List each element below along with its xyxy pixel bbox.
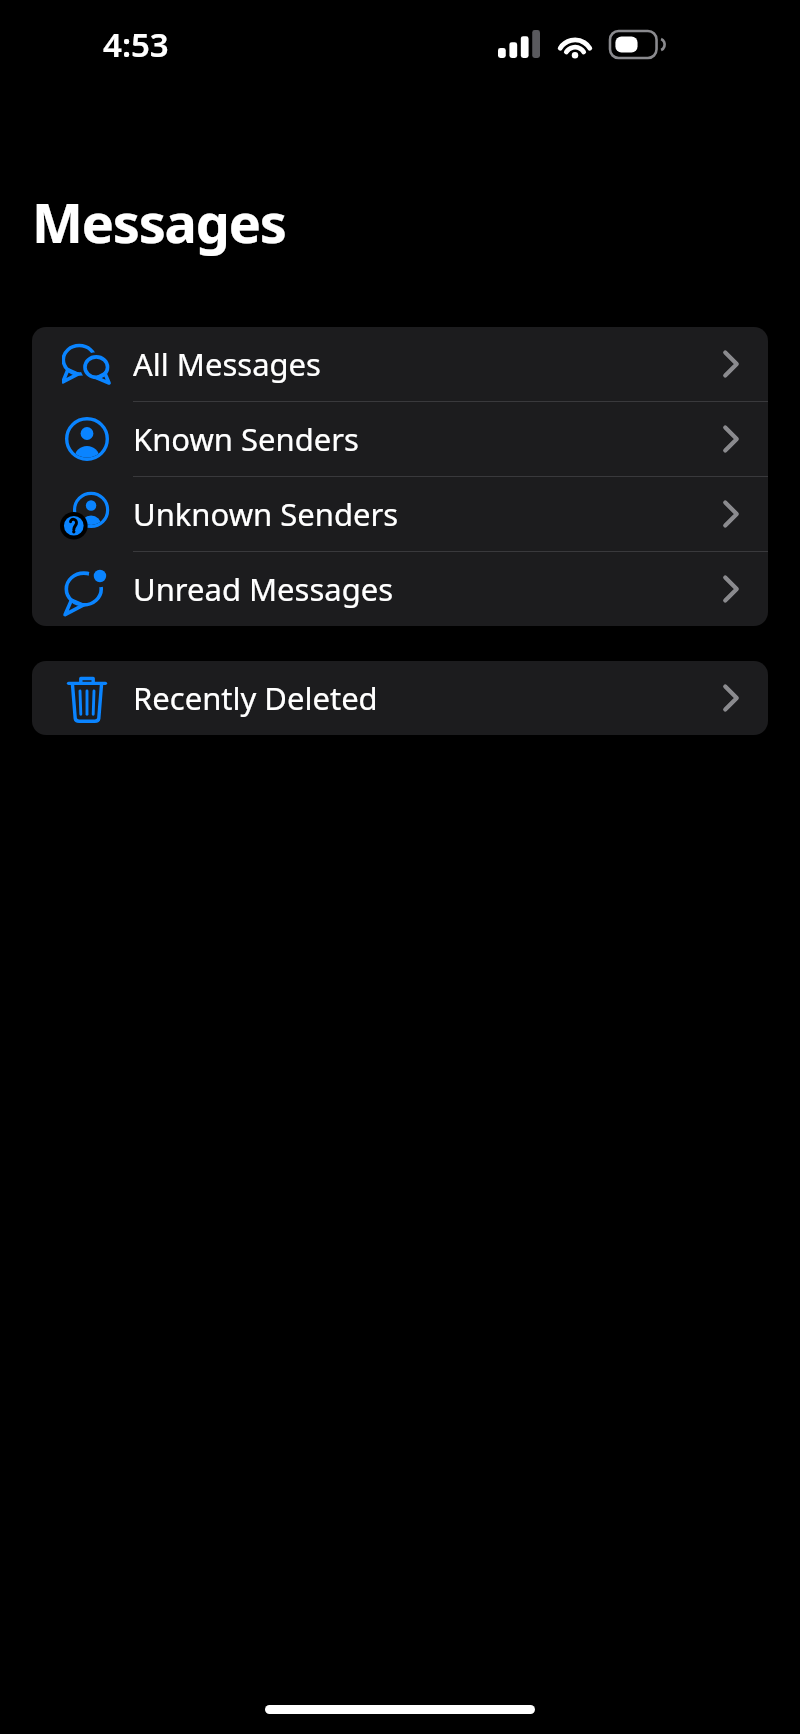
button[interactable]: Recently Deleted bbox=[32, 661, 768, 735]
staticText: Unknown Senders bbox=[133, 493, 399, 535]
staticText: Messages bbox=[32, 185, 286, 259]
staticText: 4:53 bbox=[103, 22, 169, 67]
staticText: Unread Messages bbox=[133, 568, 394, 610]
button[interactable]: Unknown Senders bbox=[32, 477, 768, 551]
other: Recently Deleted bbox=[67, 674, 107, 722]
staticText: All Messages bbox=[133, 343, 321, 385]
staticText: Recently Deleted bbox=[133, 677, 378, 719]
other: All Messages bbox=[62, 343, 112, 385]
button[interactable]: Known Senders bbox=[32, 402, 768, 476]
staticText: Known Senders bbox=[133, 418, 359, 460]
button[interactable]: All Messages bbox=[32, 327, 768, 401]
other: Known Senders bbox=[65, 417, 109, 461]
button[interactable]: Unread Messages bbox=[32, 552, 768, 626]
other: Unread Messages bbox=[64, 567, 110, 611]
other: Unknown Senders bbox=[63, 490, 111, 538]
